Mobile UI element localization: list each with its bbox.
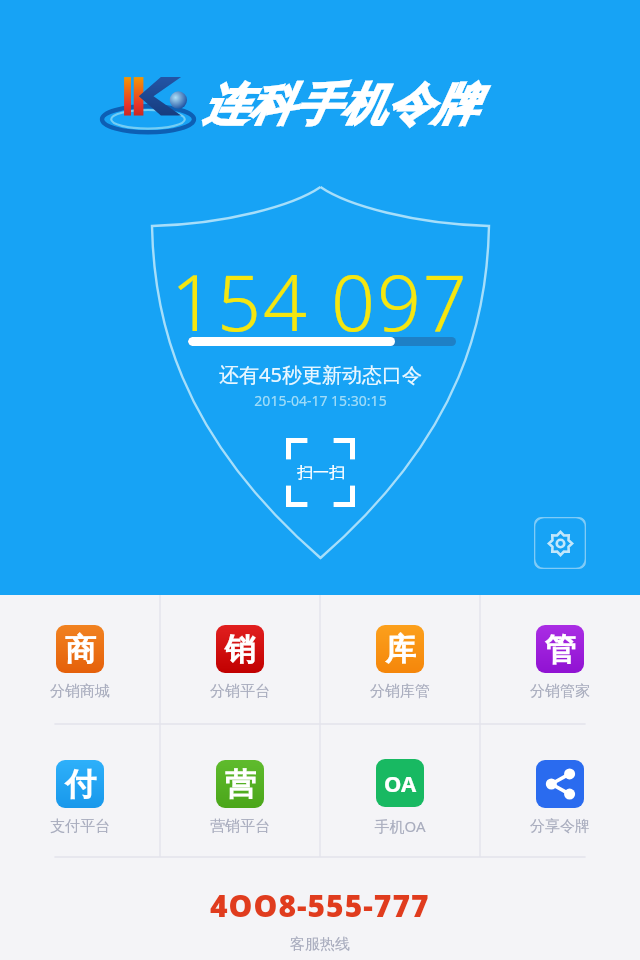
staticText: 支付平台 [50,817,110,836]
staticText: 手机OA [374,816,426,836]
staticText: 付 [65,765,96,804]
staticText: 还有45秒更新动态口令 [219,361,422,388]
staticText: 分销商城 [50,682,110,701]
button[interactable]: 设置 [534,517,586,569]
button[interactable]: 付 [0,730,160,865]
staticText: 分享令牌 [530,817,590,836]
staticText: 销 [225,630,256,669]
staticText: 2015-04-17 15:30:15 [254,391,387,410]
staticText: 商 [65,630,96,669]
button[interactable]: 商 [0,595,160,730]
staticText: 分销库管 [370,682,430,701]
staticText: 扫一扫 [297,463,345,483]
button[interactable]: 管 [480,595,640,730]
staticText: 4OO8-555-777 [210,885,430,926]
staticText: 分销管家 [530,682,590,701]
staticText: 154 097 [171,249,469,354]
button[interactable]: 库 [320,595,480,730]
button[interactable]: 4OO8-555-777 [0,865,640,960]
button[interactable]: 销 [160,595,320,730]
staticText: 营销平台 [210,817,270,836]
staticText: 库 [385,630,416,669]
staticText: 客服热线 [290,935,350,954]
staticText: 分销平台 [210,682,270,701]
staticText: 营 [225,765,256,804]
button[interactable]: 扫一扫 [286,438,355,507]
staticText: 连科手机令牌 [202,77,478,134]
staticText: OA [384,768,417,798]
button[interactable]: 分享令牌 [480,730,640,865]
button[interactable]: OA [320,730,480,865]
button[interactable]: 营 [160,730,320,865]
staticText: 管 [545,630,576,669]
